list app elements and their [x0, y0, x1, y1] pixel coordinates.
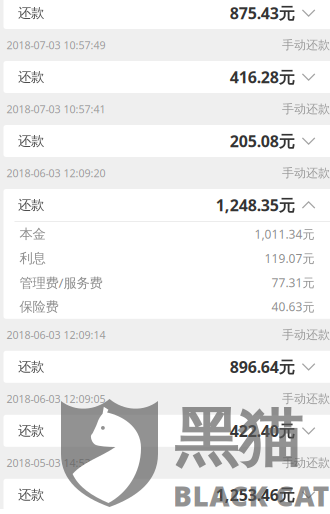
button[interactable]: 还款	[3, 125, 330, 157]
staticText: 管理费/服务费	[19, 274, 102, 291]
staticText: 1,253.46元	[216, 484, 295, 505]
staticText: 119.07元	[264, 250, 314, 266]
staticText: 205.08元	[230, 130, 295, 152]
button[interactable]: 还款	[3, 0, 330, 29]
staticText: 2018-05-03 14:53:38	[6, 456, 105, 470]
staticText: 896.64元	[230, 356, 295, 377]
staticText: 2018-06-03 12:09:05	[6, 392, 105, 406]
staticText: 还款	[18, 197, 44, 213]
staticText: 还款	[18, 133, 44, 149]
staticText: 2018-07-03 10:57:41	[6, 102, 105, 116]
staticText: 2018-07-03 10:57:49	[6, 38, 105, 52]
staticText: 手动还款	[282, 102, 330, 116]
staticText: 2018-06-03 12:09:20	[6, 166, 105, 180]
staticText: 手动还款	[282, 166, 330, 180]
button[interactable]: 还款	[3, 479, 330, 511]
staticText: 本金	[19, 226, 45, 242]
button[interactable]: 还款	[3, 351, 330, 383]
staticText: 77.31元	[271, 274, 314, 290]
staticText: 2018-06-03 12:09:14	[6, 328, 105, 342]
staticText: 875.43元	[230, 2, 295, 24]
staticText: BLACK CAT	[173, 477, 330, 514]
button[interactable]: 还款	[3, 189, 330, 221]
staticText: 1,011.34元	[254, 226, 314, 242]
staticText: 保险费	[19, 298, 58, 315]
staticText: 还款	[18, 487, 44, 503]
staticText: 黑猫	[174, 399, 302, 478]
staticText: 手动还款	[282, 38, 330, 52]
staticText: 手动还款	[282, 455, 330, 470]
button[interactable]: 还款	[3, 61, 330, 93]
staticText: 1,248.35元	[216, 194, 295, 216]
staticText: 还款	[18, 359, 44, 375]
staticText: 40.63元	[271, 299, 314, 315]
button[interactable]: 还款	[3, 415, 330, 447]
staticText: 手动还款	[282, 327, 330, 342]
staticText: 还款	[18, 5, 44, 21]
staticText: 手动还款	[282, 391, 330, 406]
staticText: 416.28元	[230, 66, 295, 88]
staticText: 利息	[19, 250, 45, 266]
staticText: 422.40元	[230, 420, 295, 441]
staticText: 还款	[18, 423, 44, 439]
staticText: 还款	[18, 69, 44, 85]
